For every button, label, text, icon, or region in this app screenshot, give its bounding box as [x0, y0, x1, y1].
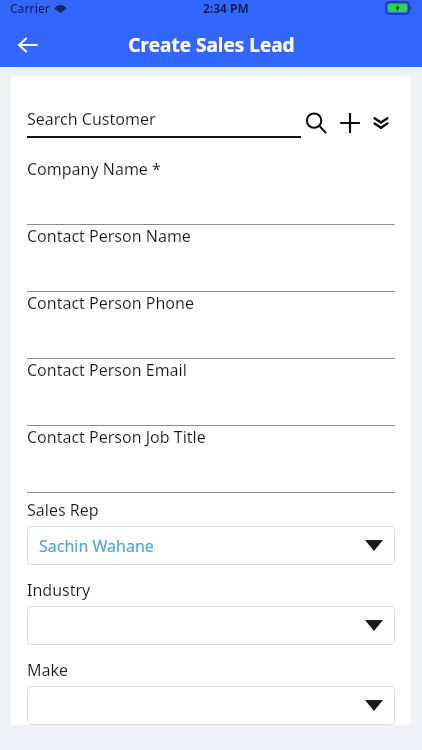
button[interactable]: Add [335, 108, 365, 138]
staticText: Make [27, 659, 69, 681]
staticText: Create Sales Lead [128, 32, 295, 58]
button[interactable]: Sachin Wahane [27, 526, 395, 565]
staticText: Industry [27, 579, 91, 601]
button[interactable]: Contact Person Phone [27, 292, 395, 359]
staticText: Search Customer [27, 108, 156, 130]
staticText: Sachin Wahane [39, 535, 154, 557]
button[interactable]: Contact Person Name [27, 225, 395, 292]
button[interactable]: Contact Person Job Title [27, 426, 395, 493]
button[interactable]: Back [6, 23, 50, 67]
staticText: Contact Person Job Title [27, 426, 206, 448]
staticText: Sales Rep [27, 499, 99, 521]
staticText: 2:34 PM [203, 0, 249, 16]
button[interactable]: Industry dropdown [27, 606, 395, 645]
staticText: Carrier [10, 0, 50, 16]
staticText: Contact Person Phone [27, 292, 194, 314]
button[interactable]: Make dropdown [27, 686, 395, 725]
button[interactable]: Company Name * [27, 158, 395, 225]
button[interactable]: Search [301, 108, 331, 138]
staticText: Company Name * [27, 158, 161, 180]
staticText: Contact Person Name [27, 225, 191, 247]
button[interactable]: Contact Person Email [27, 359, 395, 426]
staticText: Contact Person Email [27, 359, 187, 381]
button[interactable]: Expand [367, 109, 395, 137]
